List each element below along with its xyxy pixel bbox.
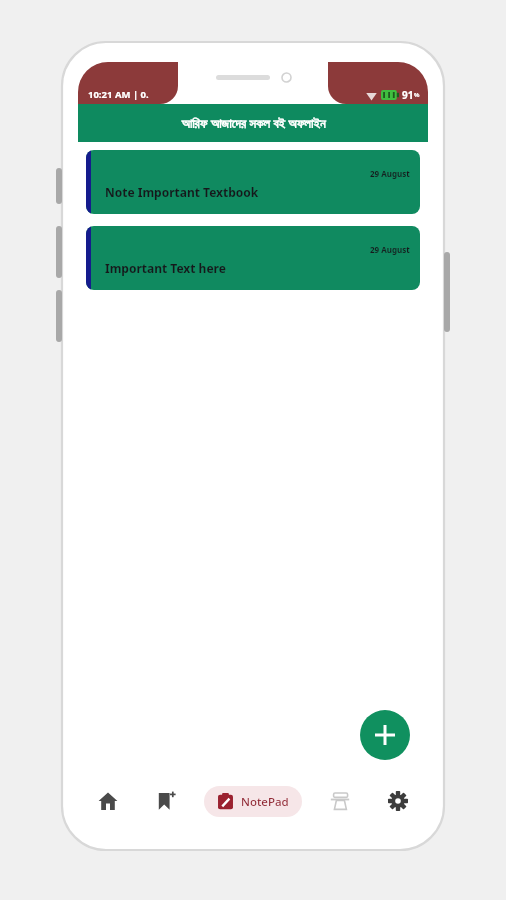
button[interactable]: 29 August: [86, 226, 420, 290]
staticText: 29 August: [370, 244, 410, 255]
staticText: Important Text here: [105, 260, 226, 276]
button[interactable]: Settings: [378, 781, 418, 821]
button[interactable]: Add note: [360, 710, 410, 760]
button[interactable]: NotePad: [204, 786, 302, 817]
staticText: NotePad: [241, 794, 289, 810]
staticText: 91: [402, 88, 414, 102]
staticText: %: [414, 91, 420, 99]
staticText: 29 August: [370, 168, 410, 179]
button[interactable]: Projector: [320, 781, 360, 821]
button[interactable]: Bookmarks: [146, 781, 186, 821]
staticText: আরিফ আজাদের সকল বই অফলাইন: [181, 114, 326, 132]
button[interactable]: Home: [88, 781, 128, 821]
staticText: Note Important Textbook: [105, 184, 259, 200]
staticText: 10:21 AM | 0.: [88, 88, 149, 101]
button[interactable]: 29 August: [86, 150, 420, 214]
